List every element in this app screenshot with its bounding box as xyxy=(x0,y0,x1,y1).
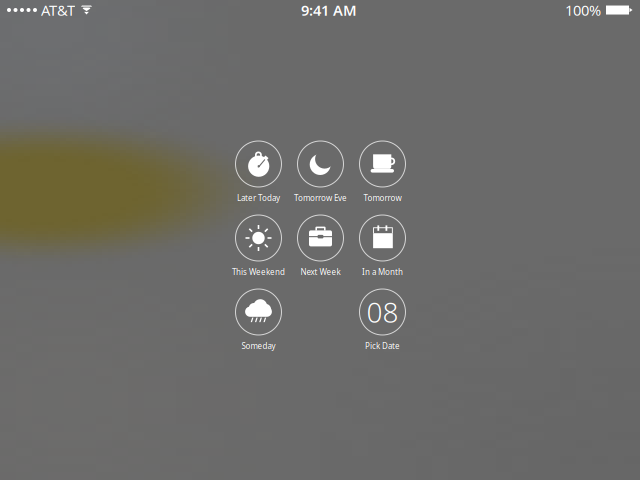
button[interactable]: 08 xyxy=(351,289,413,352)
button[interactable]: This Weekend xyxy=(227,215,289,278)
button[interactable]: Next Week xyxy=(289,215,351,278)
button[interactable]: Someday xyxy=(227,289,289,352)
staticText: 08 xyxy=(366,293,398,331)
staticText: Tomorrow Eve xyxy=(294,193,347,203)
staticText: Later Today xyxy=(237,193,280,203)
staticText: 100% xyxy=(565,0,601,20)
staticText: Tomorrow xyxy=(363,193,401,203)
button[interactable]: In a Month xyxy=(351,215,413,278)
staticText: This Weekend xyxy=(232,267,285,277)
button[interactable]: Later Today xyxy=(227,141,289,204)
staticText: In a Month xyxy=(362,267,403,277)
staticText: Next Week xyxy=(300,267,340,277)
button[interactable]: Tomorrow xyxy=(351,141,413,204)
staticText: Pick Date xyxy=(365,341,400,351)
staticText: Someday xyxy=(241,341,275,351)
staticText: AT&T xyxy=(41,0,75,20)
button[interactable]: Tomorrow Eve xyxy=(289,141,351,204)
staticText: 9:41 AM xyxy=(301,0,357,20)
